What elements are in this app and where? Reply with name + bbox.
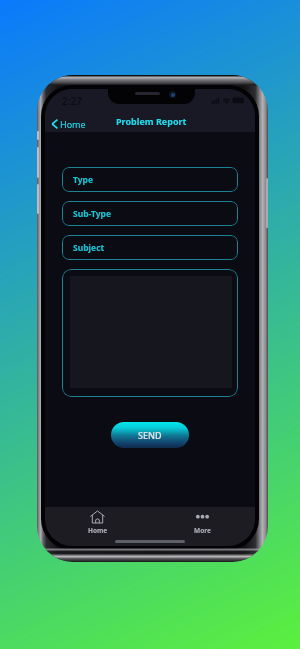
button[interactable]	[62, 269, 238, 397]
button[interactable]: Home	[45, 507, 150, 537]
button[interactable]: More	[150, 507, 255, 537]
button[interactable]: Type	[62, 167, 238, 192]
staticText: Home	[88, 526, 108, 535]
button[interactable]: Sub-Type	[62, 201, 238, 226]
staticText: More	[194, 526, 211, 535]
staticText: Subject	[73, 242, 105, 254]
button[interactable]: Subject	[62, 235, 238, 260]
staticText: 2:27	[62, 94, 82, 108]
button[interactable]: Home	[51, 116, 86, 131]
staticText: Type	[73, 174, 94, 186]
button[interactable]: SEND	[111, 422, 189, 448]
staticText: SEND	[138, 429, 162, 441]
staticText: Home	[60, 118, 86, 130]
staticText: Problem Report	[116, 115, 187, 127]
staticText: Sub-Type	[73, 208, 111, 220]
